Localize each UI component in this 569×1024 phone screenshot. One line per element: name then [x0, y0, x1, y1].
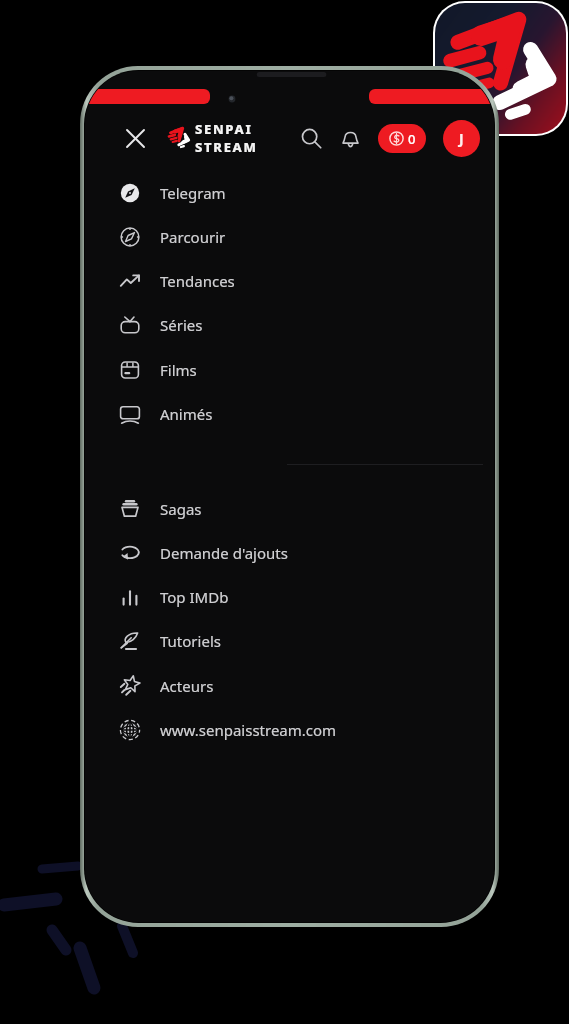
- staticText: J: [459, 129, 464, 148]
- button[interactable]: Parcourir: [85, 215, 494, 259]
- button[interactable]: Notifications: [334, 122, 366, 154]
- button[interactable]: J: [443, 120, 480, 157]
- button[interactable]: Acteurs: [85, 664, 494, 708]
- button[interactable]: www.senpaisstream.com: [85, 708, 494, 752]
- staticText: www.senpaisstream.com: [160, 720, 337, 740]
- staticText: Top IMDb: [160, 587, 229, 607]
- button[interactable]: Rechercher: [295, 122, 327, 154]
- button[interactable]: Tendances: [85, 259, 494, 303]
- staticText: Films: [160, 360, 197, 380]
- staticText: Acteurs: [160, 676, 214, 696]
- staticText: 0: [408, 130, 416, 148]
- button[interactable]: Films: [85, 348, 494, 392]
- staticText: SENPAI: [195, 120, 253, 138]
- button[interactable]: Séries: [85, 303, 494, 347]
- staticText: Séries: [160, 315, 203, 335]
- button[interactable]: Top IMDb: [85, 575, 494, 619]
- staticText: Sagas: [160, 499, 202, 519]
- button[interactable]: Sagas: [85, 487, 494, 531]
- staticText: Parcourir: [160, 227, 226, 247]
- button[interactable]: Tutoriels: [85, 619, 494, 663]
- button[interactable]: SENPAI: [166, 119, 258, 157]
- staticText: Tutoriels: [160, 631, 221, 651]
- button[interactable]: Telegram: [85, 171, 494, 215]
- staticText: Animés: [160, 404, 213, 424]
- button[interactable]: Animés: [85, 392, 494, 436]
- staticText: STREAM: [195, 138, 258, 156]
- staticText: Demande d'ajouts: [160, 543, 288, 563]
- staticText: Tendances: [160, 271, 235, 291]
- button[interactable]: Demande d'ajouts: [85, 531, 494, 575]
- button[interactable]: Fermer: [119, 122, 151, 154]
- button[interactable]: 0: [378, 124, 426, 153]
- staticText: Telegram: [160, 183, 226, 203]
